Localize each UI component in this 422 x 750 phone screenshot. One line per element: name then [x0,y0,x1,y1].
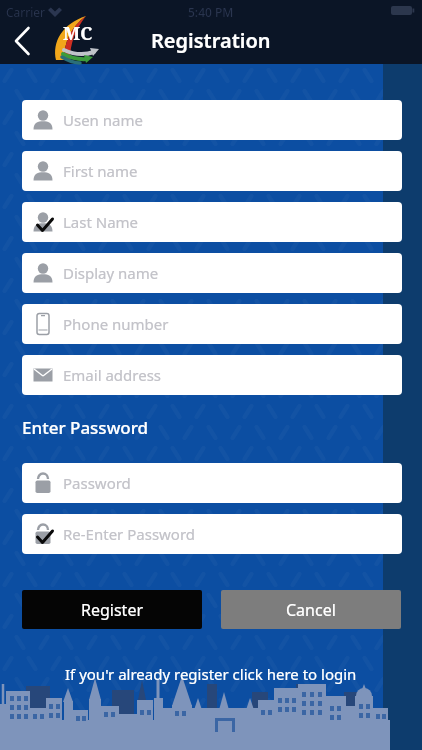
button[interactable]: Register [22,590,202,629]
staticText: 5:40 PM [188,4,234,20]
staticText: Registration [151,27,271,54]
staticText: If you'r already register click here to … [65,664,357,684]
button[interactable]: Re-Enter Password [22,514,402,554]
staticText: Email address [63,365,162,385]
staticText: Display name [63,263,159,283]
button[interactable]: Usen name [22,100,402,140]
staticText: Phone number [63,314,169,334]
staticText: Usen name [63,110,143,130]
button[interactable]: Email address [22,355,402,395]
staticText: Enter Password [22,416,149,439]
staticText: First name [63,161,138,181]
staticText: Password [63,473,131,493]
staticText: Register [81,599,144,621]
staticText: MC [63,21,93,46]
staticText: Last Name [63,212,139,232]
button[interactable]: Cancel [221,590,401,629]
button[interactable]: Last Name [22,202,402,242]
button[interactable]: Password [22,463,402,503]
staticText: Carrier [6,4,46,20]
button[interactable]: Phone number [22,304,402,344]
button[interactable]: If you'r already register click here to … [61,660,361,688]
staticText: Cancel [286,599,336,621]
button[interactable] [4,22,40,60]
staticText: Re-Enter Password [63,524,196,544]
button[interactable]: Display name [22,253,402,293]
button[interactable]: First name [22,151,402,191]
